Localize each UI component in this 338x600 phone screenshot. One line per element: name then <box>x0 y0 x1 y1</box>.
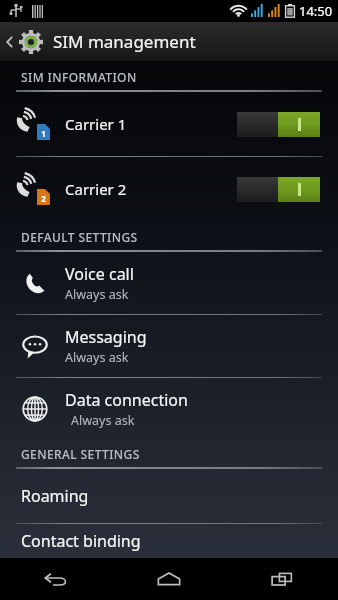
button[interactable]: Recent apps <box>225 558 338 600</box>
button[interactable]: Back <box>0 558 112 600</box>
staticText: Messaging <box>65 326 147 348</box>
staticText: 2 <box>41 193 46 204</box>
button[interactable]: Data connection <box>0 378 338 440</box>
staticText: Always ask <box>65 286 129 303</box>
staticText: 1 <box>41 128 46 139</box>
staticText: 14:50 <box>299 2 333 20</box>
button[interactable]: 1 <box>0 92 338 156</box>
staticText: DEFAULT SETTINGS <box>21 229 138 245</box>
button[interactable]: Messaging <box>0 315 338 377</box>
staticText: Contact binding <box>21 530 141 552</box>
staticText: SIM INFORMATION <box>21 69 137 85</box>
button[interactable]: Contact binding <box>0 524 338 558</box>
button[interactable]: 2 <box>0 157 338 221</box>
staticText: Carrier 2 <box>65 179 127 199</box>
button[interactable]: Navigate up: SIM management <box>0 22 338 61</box>
staticText: Carrier 1 <box>65 114 127 134</box>
button[interactable]: Roaming <box>0 469 338 523</box>
staticText: Data connection <box>65 389 188 411</box>
button[interactable]: Voice call <box>0 252 338 314</box>
button[interactable]: Home <box>112 558 225 600</box>
staticText: GENERAL SETTINGS <box>21 446 140 462</box>
staticText: SIM management <box>53 30 196 53</box>
staticText: Voice call <box>65 263 134 285</box>
button[interactable]: Toggle SIM on <box>237 112 320 137</box>
staticText: Roaming <box>21 485 89 507</box>
staticText: Always ask <box>65 349 129 366</box>
staticText: Always ask <box>71 412 135 429</box>
button[interactable]: Toggle SIM on <box>237 177 320 202</box>
